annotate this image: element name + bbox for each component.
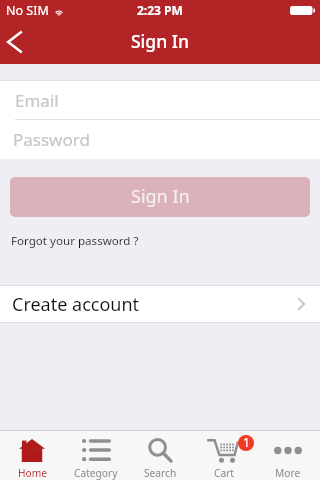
staticText: Home xyxy=(18,466,47,480)
staticText: No SIM xyxy=(6,2,49,19)
button[interactable]: Email xyxy=(0,81,320,119)
staticText: Sign In xyxy=(131,184,190,209)
button[interactable]: Forgot your password ? xyxy=(11,233,320,249)
button[interactable]: Back xyxy=(0,20,40,64)
staticText: Category xyxy=(74,466,118,480)
staticText: Search xyxy=(144,466,177,480)
staticText: Password xyxy=(13,128,90,151)
button[interactable]: Home xyxy=(0,431,64,480)
button[interactable]: Sign In xyxy=(10,177,310,217)
button[interactable]: Search xyxy=(128,431,192,480)
button[interactable]: 1 xyxy=(192,431,256,480)
button[interactable]: Create account xyxy=(0,286,320,322)
button[interactable]: Password xyxy=(0,120,320,159)
button[interactable]: Category xyxy=(64,431,128,480)
staticText: 1 xyxy=(243,435,250,450)
button[interactable]: More xyxy=(256,431,320,480)
staticText: More xyxy=(275,466,301,480)
staticText: 2:23 PM xyxy=(137,2,183,18)
staticText: Sign In xyxy=(131,29,189,53)
staticText: Cart xyxy=(214,466,235,480)
staticText: Forgot your password ? xyxy=(11,233,139,249)
staticText: Email xyxy=(15,89,59,112)
staticText: Create account xyxy=(12,292,140,317)
